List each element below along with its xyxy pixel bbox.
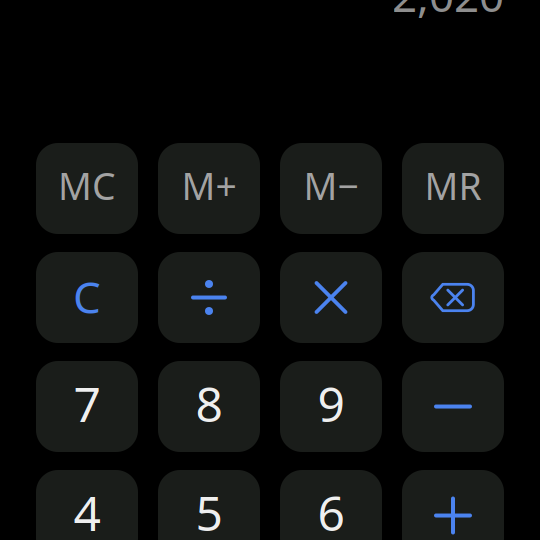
staticText: MR <box>424 161 481 210</box>
staticText: 4 <box>73 481 100 540</box>
button[interactable]: M− <box>280 143 382 234</box>
button[interactable]: 8 <box>158 361 260 452</box>
staticText: 6 <box>317 481 344 540</box>
staticText: 2,020 <box>392 0 504 24</box>
staticText: C <box>73 267 101 326</box>
staticText: 5 <box>195 481 222 540</box>
staticText: 7 <box>73 372 100 435</box>
button[interactable]: Divide <box>158 252 260 343</box>
staticText: M+ <box>181 161 236 210</box>
button[interactable]: 6 <box>280 470 382 540</box>
staticText: MC <box>58 161 116 210</box>
button[interactable]: 5 <box>158 470 260 540</box>
button[interactable]: MR <box>402 143 504 234</box>
button[interactable]: C <box>36 252 138 343</box>
button[interactable]: Minus <box>402 361 504 452</box>
button[interactable]: Delete <box>402 252 504 343</box>
button[interactable]: 9 <box>280 361 382 452</box>
button[interactable]: Plus <box>402 470 504 540</box>
button[interactable]: M+ <box>158 143 260 234</box>
button[interactable]: Multiply <box>280 252 382 343</box>
button[interactable]: 4 <box>36 470 138 540</box>
button[interactable]: 7 <box>36 361 138 452</box>
staticText: 9 <box>317 372 344 435</box>
staticText: 8 <box>195 372 222 435</box>
button[interactable]: MC <box>36 143 138 234</box>
staticText: M− <box>303 161 358 210</box>
